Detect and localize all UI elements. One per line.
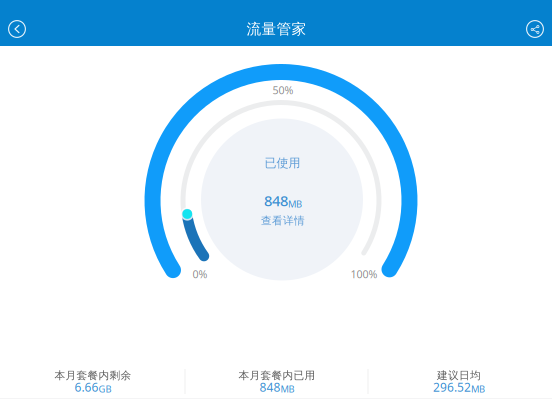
staticText: 848 <box>259 379 280 395</box>
staticText: 建议日均 <box>437 369 481 382</box>
staticText: MB <box>471 383 485 395</box>
button[interactable]: 848 <box>228 190 338 228</box>
staticText: 296.52 <box>433 379 471 395</box>
staticText: 查看详情 <box>261 214 305 227</box>
staticText: GB <box>98 383 111 395</box>
staticText: 50% <box>272 83 293 97</box>
button[interactable]: 建议日均 <box>374 364 544 400</box>
staticText: 0% <box>192 267 207 281</box>
staticText: 本月套餐内剩余 <box>54 369 131 382</box>
staticText: MB <box>280 383 294 395</box>
staticText: 848 <box>264 191 288 210</box>
button[interactable]: 本月套餐内剩余 <box>8 364 178 400</box>
staticText: 100% <box>350 267 377 281</box>
staticText: MB <box>288 198 302 210</box>
button[interactable]: 本月套餐内已用 <box>192 364 362 400</box>
staticText: 流量管家 <box>246 20 306 38</box>
button[interactable]: Share <box>518 12 552 46</box>
staticText: 已使用 <box>264 156 300 170</box>
button[interactable]: Back <box>0 12 34 46</box>
staticText: 本月套餐内已用 <box>238 369 315 382</box>
staticText: 6.66 <box>74 379 98 395</box>
